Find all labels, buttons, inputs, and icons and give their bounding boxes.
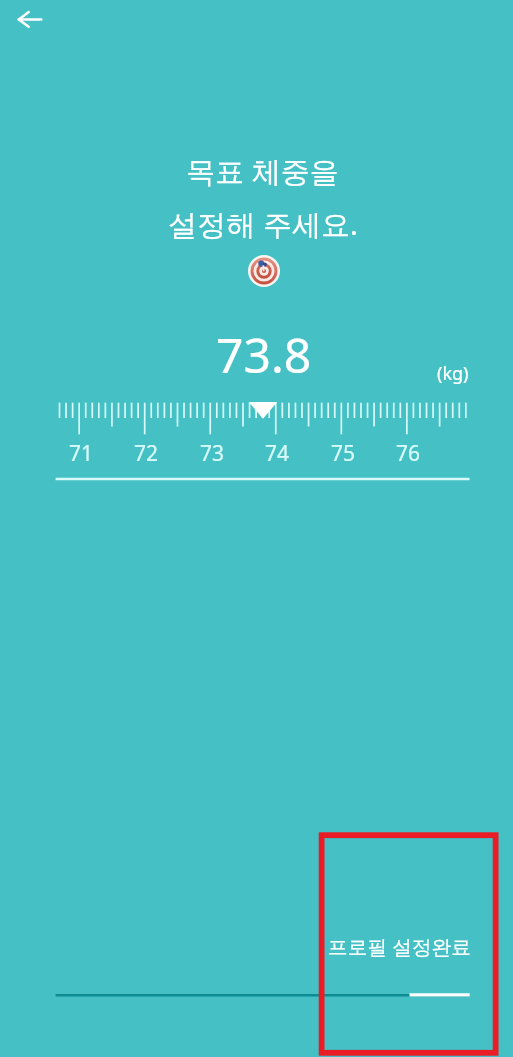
button[interactable]: Target weight ruler, 73.8 kilograms [40,395,480,487]
staticText: 75 [331,439,356,468]
button[interactable]: Back [5,6,54,51]
staticText: 73 [200,439,225,468]
staticText: 76 [396,439,421,468]
button[interactable]: 프로필 설정완료 [319,918,471,982]
staticText: 72 [134,439,159,468]
staticText: 73.8 [216,322,312,387]
staticText: (kg) [437,361,469,386]
staticText: 프로필 설정완료 [328,933,471,960]
staticText: 71 [69,439,94,468]
staticText: 74 [265,439,290,468]
staticText: 목표 체중을 [186,151,339,191]
staticText: 설정해 주세요. [168,204,358,244]
